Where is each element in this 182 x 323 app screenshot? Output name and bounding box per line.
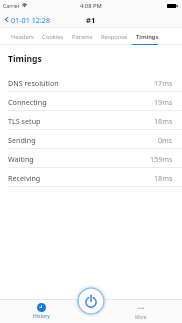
button[interactable]: TLS setup [0,111,182,130]
staticText: 01-01 12:28 [11,15,50,25]
staticText: More [135,314,147,320]
staticText: 18ms [154,116,173,126]
staticText: Response [101,33,128,41]
staticText: 0ms [158,135,173,145]
button[interactable]: Sending [0,130,182,149]
button[interactable]: More [129,299,153,323]
button[interactable]: 01-01 12:28 [0,11,53,28]
staticText: 4:08 PM [80,2,102,10]
staticText: 19ms [154,97,173,107]
button[interactable]: DNS resolution [0,73,182,92]
staticText: Connecting [8,97,47,107]
staticText: Carrier [3,2,20,9]
staticText: Timings [8,53,42,65]
staticText: DNS resolution [8,78,59,88]
staticText: 18ms [154,173,173,183]
staticText: Sending [8,135,36,145]
staticText: Cookies [42,33,64,41]
button[interactable]: Timings [132,28,163,45]
staticText: 17ms [154,78,173,88]
button[interactable]: Waiting [0,149,182,168]
staticText: TLS setup [8,116,41,126]
button[interactable]: Cookies [38,28,68,45]
staticText: Waiting [8,154,34,164]
button[interactable]: Receiving [0,168,182,187]
button[interactable]: Send request [73,283,109,319]
staticText: 159ms [150,154,173,164]
button[interactable]: Headers [7,28,38,45]
button[interactable]: Response [97,28,132,45]
button[interactable]: Connecting [0,92,182,111]
staticText: #1 [86,15,96,25]
button[interactable]: History [29,299,53,323]
staticText: Receiving [8,173,41,183]
staticText: History [33,313,50,320]
staticText: Params [72,33,93,41]
staticText: Timings [136,33,159,41]
staticText: Headers [11,33,34,41]
button[interactable]: Params [68,28,97,45]
